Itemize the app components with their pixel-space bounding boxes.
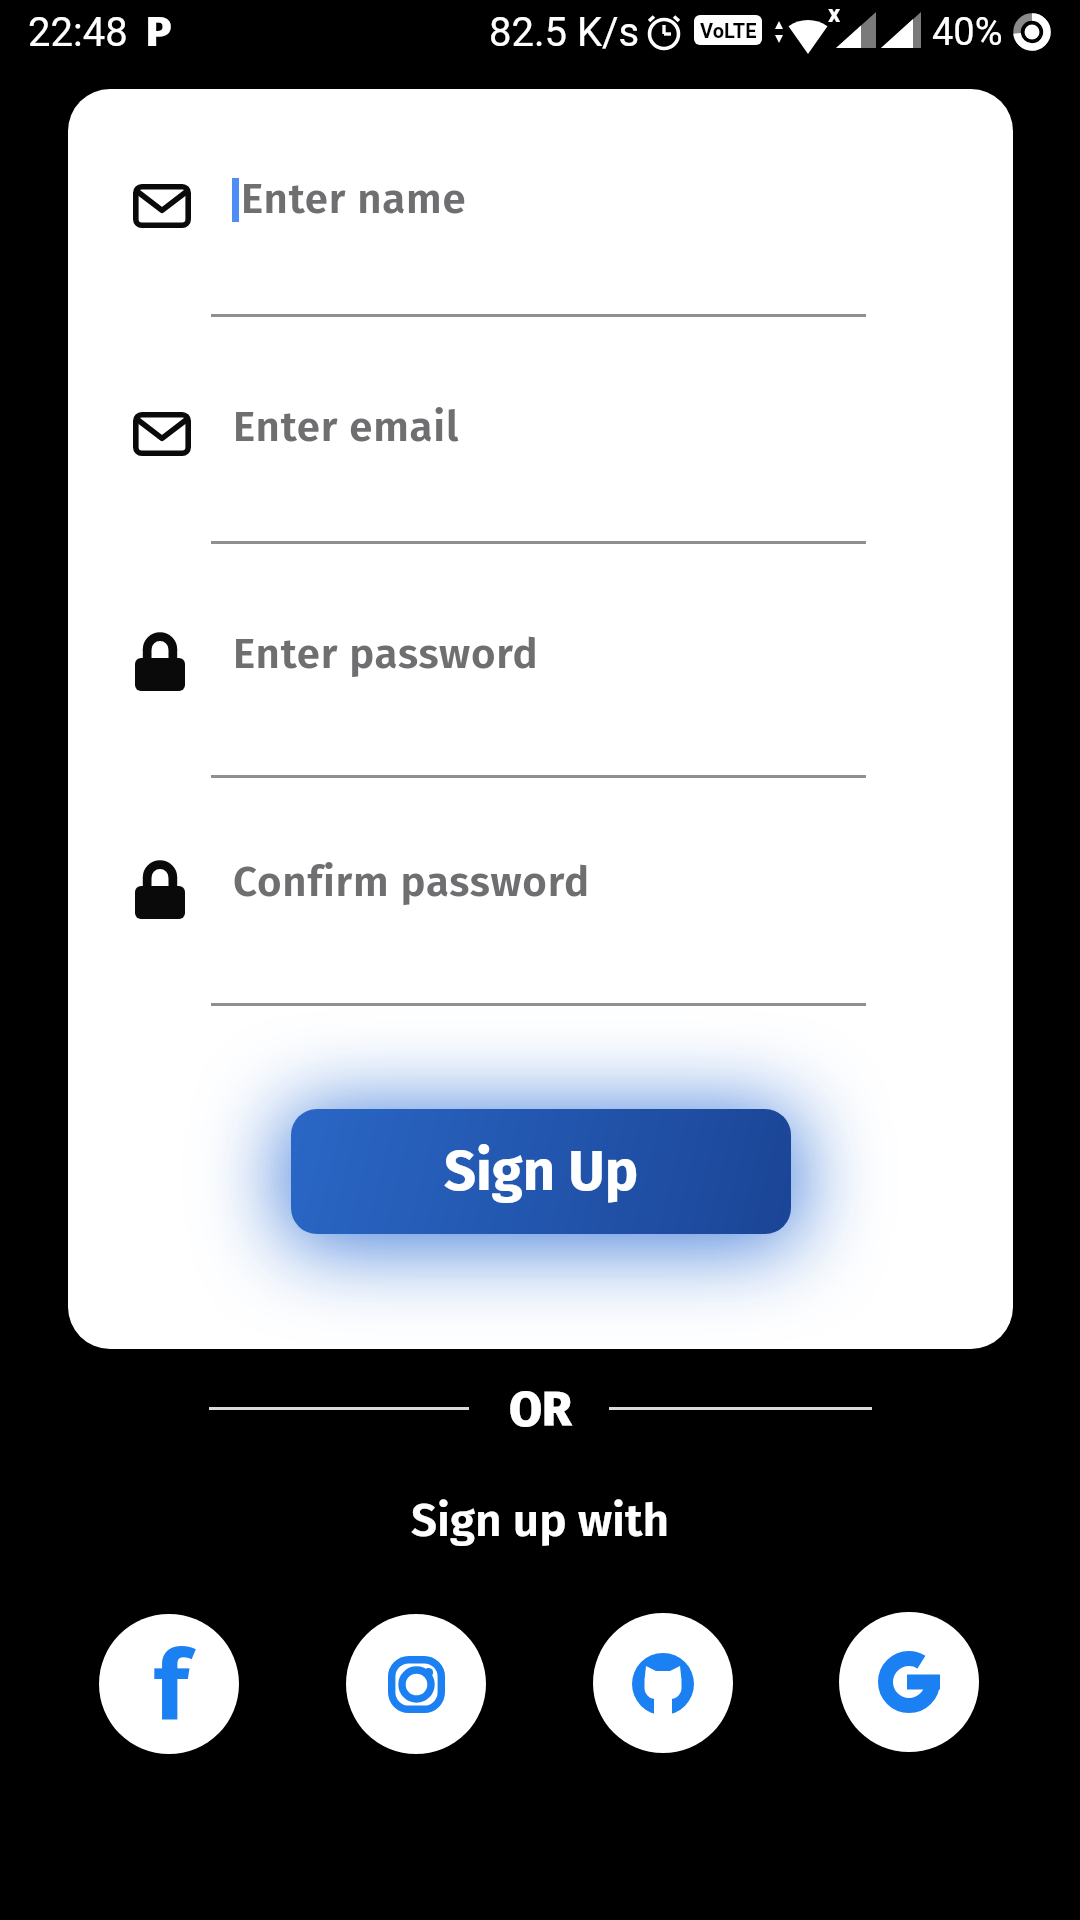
staticText: 82.5 K/s [489,9,640,56]
staticText: Enter name [241,174,467,224]
staticText: VoLTE [700,19,757,42]
button[interactable] [134,601,866,780]
staticText: Sign up with [411,1493,670,1548]
staticText: P [146,7,172,57]
button[interactable] [134,374,866,546]
button[interactable] [134,829,866,1008]
button[interactable] [593,1613,733,1753]
staticText: Confirm password [233,857,590,907]
staticText: 40% [932,10,1003,55]
button[interactable] [346,1614,486,1754]
staticText: 22:48 [28,9,128,56]
button[interactable] [839,1612,979,1752]
staticText: OR [509,1381,572,1439]
button[interactable] [134,146,866,319]
button[interactable]: Sign Up [291,1109,791,1234]
button[interactable]: f [99,1614,239,1754]
staticText: Enter password [233,629,539,679]
staticText: x [828,0,841,28]
staticText: f [154,1629,189,1745]
staticText: Sign Up [444,1138,639,1205]
staticText: Enter email [233,402,460,452]
